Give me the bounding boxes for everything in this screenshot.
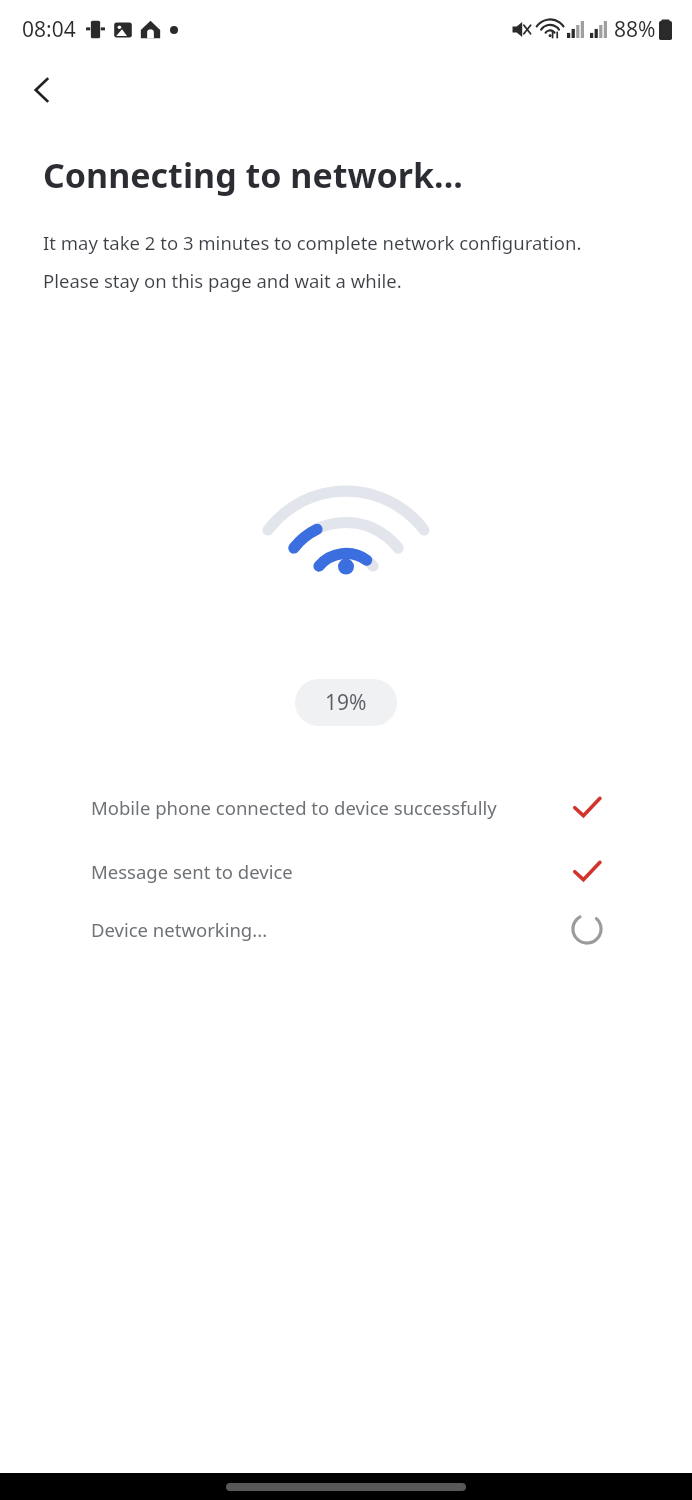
- staticText: 19%: [325, 688, 367, 717]
- other: Completed: [569, 853, 605, 889]
- button[interactable]: 19%: [295, 679, 397, 726]
- other: Connecting: [241, 453, 451, 603]
- staticText: Mobile phone connected to device success…: [91, 795, 527, 820]
- staticText: It may take 2 to 3 minutes to complete n…: [43, 230, 604, 293]
- button[interactable]: Back: [14, 62, 70, 118]
- staticText: 88%: [614, 15, 656, 44]
- button[interactable]: Device networking...: [0, 900, 692, 958]
- other: In progress: [570, 912, 604, 946]
- staticText: Message sent to device: [91, 859, 527, 884]
- button[interactable]: Mobile phone connected to device success…: [0, 772, 692, 842]
- other: Completed: [569, 789, 605, 825]
- button[interactable]: Message sent to device: [0, 842, 692, 900]
- staticText: Connecting to network...: [43, 152, 463, 198]
- staticText: Device networking...: [91, 917, 527, 942]
- staticText: 08:04: [22, 15, 76, 44]
